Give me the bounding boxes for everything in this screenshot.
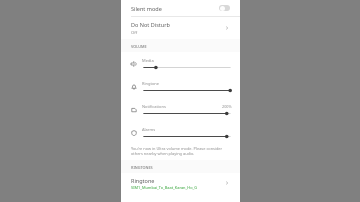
button[interactable]: Media <box>121 52 240 75</box>
staticText: SIM1_Mumbai_To_Baat_Karan_Ho_G <box>131 185 198 190</box>
staticText: Do Not Disturb <box>131 21 170 28</box>
staticText: VOLUME <box>131 44 147 49</box>
button[interactable]: Silent mode <box>121 0 240 16</box>
staticText: Alarms <box>142 127 156 132</box>
staticText: Media <box>142 58 154 63</box>
button[interactable]: Notifications <box>121 98 240 121</box>
staticText: 200% <box>222 104 232 109</box>
staticText: Off <box>131 30 138 36</box>
button[interactable]: Ringtone <box>121 75 240 98</box>
staticText: RINGTONES <box>131 165 153 170</box>
staticText: You're now in Ultra volume mode. Please … <box>131 146 232 156</box>
staticText: Silent mode <box>131 5 162 12</box>
button[interactable]: Alarms <box>121 121 240 144</box>
staticText: Ringtone <box>142 81 160 86</box>
button[interactable]: Ringtone <box>121 173 240 193</box>
staticText: Ringtone <box>131 177 155 184</box>
staticText: Notifications <box>142 104 166 109</box>
button[interactable]: Do Not Disturb <box>121 17 240 39</box>
